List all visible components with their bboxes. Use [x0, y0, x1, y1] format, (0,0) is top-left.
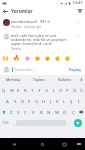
staticText: O	[59, 87, 63, 93]
button[interactable]: Like comment	[75, 20, 81, 26]
staticText: K	[56, 98, 59, 104]
button[interactable]: Backspace	[77, 106, 85, 117]
button[interactable]: React with emoji	[52, 53, 62, 64]
staticText: E	[17, 87, 20, 93]
staticText: C	[24, 109, 27, 115]
button[interactable]: G	[33, 95, 40, 106]
button[interactable]: I	[50, 84, 57, 95]
button[interactable]: Share post	[75, 6, 85, 16]
button[interactable]: Merhaba	[0, 75, 26, 84]
button[interactable]: L	[61, 95, 68, 106]
button[interactable]: Kullanıcı	[52, 75, 78, 84]
staticText: 14:47	[72, 0, 83, 6]
staticText: L	[63, 98, 66, 104]
button[interactable]: Ü	[78, 84, 85, 95]
staticText: N	[47, 109, 51, 115]
staticText: Ç	[72, 109, 75, 115]
staticText: İ	[78, 98, 80, 104]
staticText: Ğ	[73, 87, 77, 93]
staticText: U	[45, 87, 49, 93]
button[interactable]: Home	[28, 138, 56, 150]
button[interactable]: ?123	[0, 117, 10, 128]
staticText: B	[40, 109, 43, 115]
button[interactable]: React with emoji	[11, 53, 22, 64]
button[interactable]: Send	[71, 117, 85, 128]
button[interactable]: Like comment	[75, 34, 81, 40]
button[interactable]: B	[37, 106, 45, 117]
button[interactable]: Toplam	[26, 75, 52, 84]
button[interactable]: A	[3, 95, 11, 106]
button[interactable]: H	[40, 95, 47, 106]
button[interactable]: Ğ	[71, 84, 78, 95]
button[interactable]: Back	[0, 6, 11, 16]
button[interactable]: React with emoji	[62, 53, 72, 64]
button[interactable]: React with emoji	[42, 53, 52, 64]
button[interactable]: K	[54, 95, 61, 106]
staticText: Q	[2, 87, 6, 93]
staticText: Yanıtla	[11, 47, 21, 51]
staticText: Kullanıcı	[58, 77, 72, 82]
staticText: Yorumlar	[11, 8, 33, 15]
button[interactable]: Q	[0, 84, 8, 95]
button[interactable]: Paylaş	[68, 66, 82, 73]
button[interactable]: Shift	[0, 106, 8, 117]
button[interactable]: C	[22, 106, 29, 117]
staticText: I	[53, 87, 55, 93]
button[interactable]: M	[53, 106, 61, 117]
staticText: W	[10, 87, 14, 93]
button[interactable]: U	[43, 84, 50, 95]
staticText: Ü	[80, 87, 84, 93]
button[interactable]: Back	[0, 138, 28, 150]
staticText: R	[24, 87, 27, 93]
staticText: Yanıtla Çeviriyi gör	[11, 25, 42, 29]
staticText: Merhaba	[6, 77, 21, 82]
button[interactable]: Ş	[68, 95, 75, 106]
button[interactable]: React with emoji	[32, 53, 42, 64]
button[interactable]: Voice input	[78, 75, 85, 84]
staticText: P	[66, 87, 69, 93]
button[interactable]: Ç	[69, 106, 77, 117]
button[interactable]: React with emoji	[0, 53, 11, 64]
staticText: G	[35, 98, 39, 104]
button[interactable]: Z	[8, 106, 15, 117]
button[interactable]: Y	[36, 84, 43, 95]
button[interactable]: V	[29, 106, 37, 117]
button[interactable]: ,	[10, 117, 16, 128]
button[interactable]: X	[15, 106, 22, 117]
button[interactable]: O	[57, 84, 64, 95]
button[interactable]: T	[29, 84, 36, 95]
staticText: Toplam	[33, 77, 45, 82]
staticText: Y	[38, 87, 41, 93]
staticText: H	[42, 98, 46, 104]
button[interactable]: S	[11, 95, 19, 106]
staticText: T	[31, 87, 34, 93]
button[interactable]: İ	[75, 95, 82, 106]
staticText: X	[17, 109, 20, 115]
button[interactable]: E	[15, 84, 22, 95]
button[interactable]: J	[47, 95, 54, 106]
button[interactable]: F	[26, 95, 33, 106]
staticText: F	[28, 98, 31, 104]
staticText: Z	[10, 109, 13, 115]
button[interactable]: D	[19, 95, 26, 106]
staticText: Paylaş	[69, 67, 81, 72]
staticText: 🔥	[13, 55, 20, 62]
staticText: Ö	[63, 109, 67, 115]
staticText: 🙌	[2, 55, 9, 62]
button[interactable]: React with emoji	[22, 53, 32, 64]
button[interactable]: N	[45, 106, 53, 117]
staticText: .	[68, 120, 69, 125]
staticText: ?123	[2, 121, 9, 125]
button[interactable]: Ö	[61, 106, 69, 117]
staticText: V	[32, 109, 35, 115]
button[interactable]: R	[22, 84, 29, 95]
button[interactable]: W	[8, 84, 15, 95]
button[interactable]: Recent apps	[56, 138, 72, 150]
staticText: J	[50, 98, 52, 104]
staticText: A	[6, 98, 9, 104]
staticText: meli_cabl Sonuçları en çok kıskandıran, …	[11, 33, 74, 46]
button[interactable]: P	[64, 84, 71, 95]
button[interactable]: Switch keyboard	[72, 138, 85, 150]
